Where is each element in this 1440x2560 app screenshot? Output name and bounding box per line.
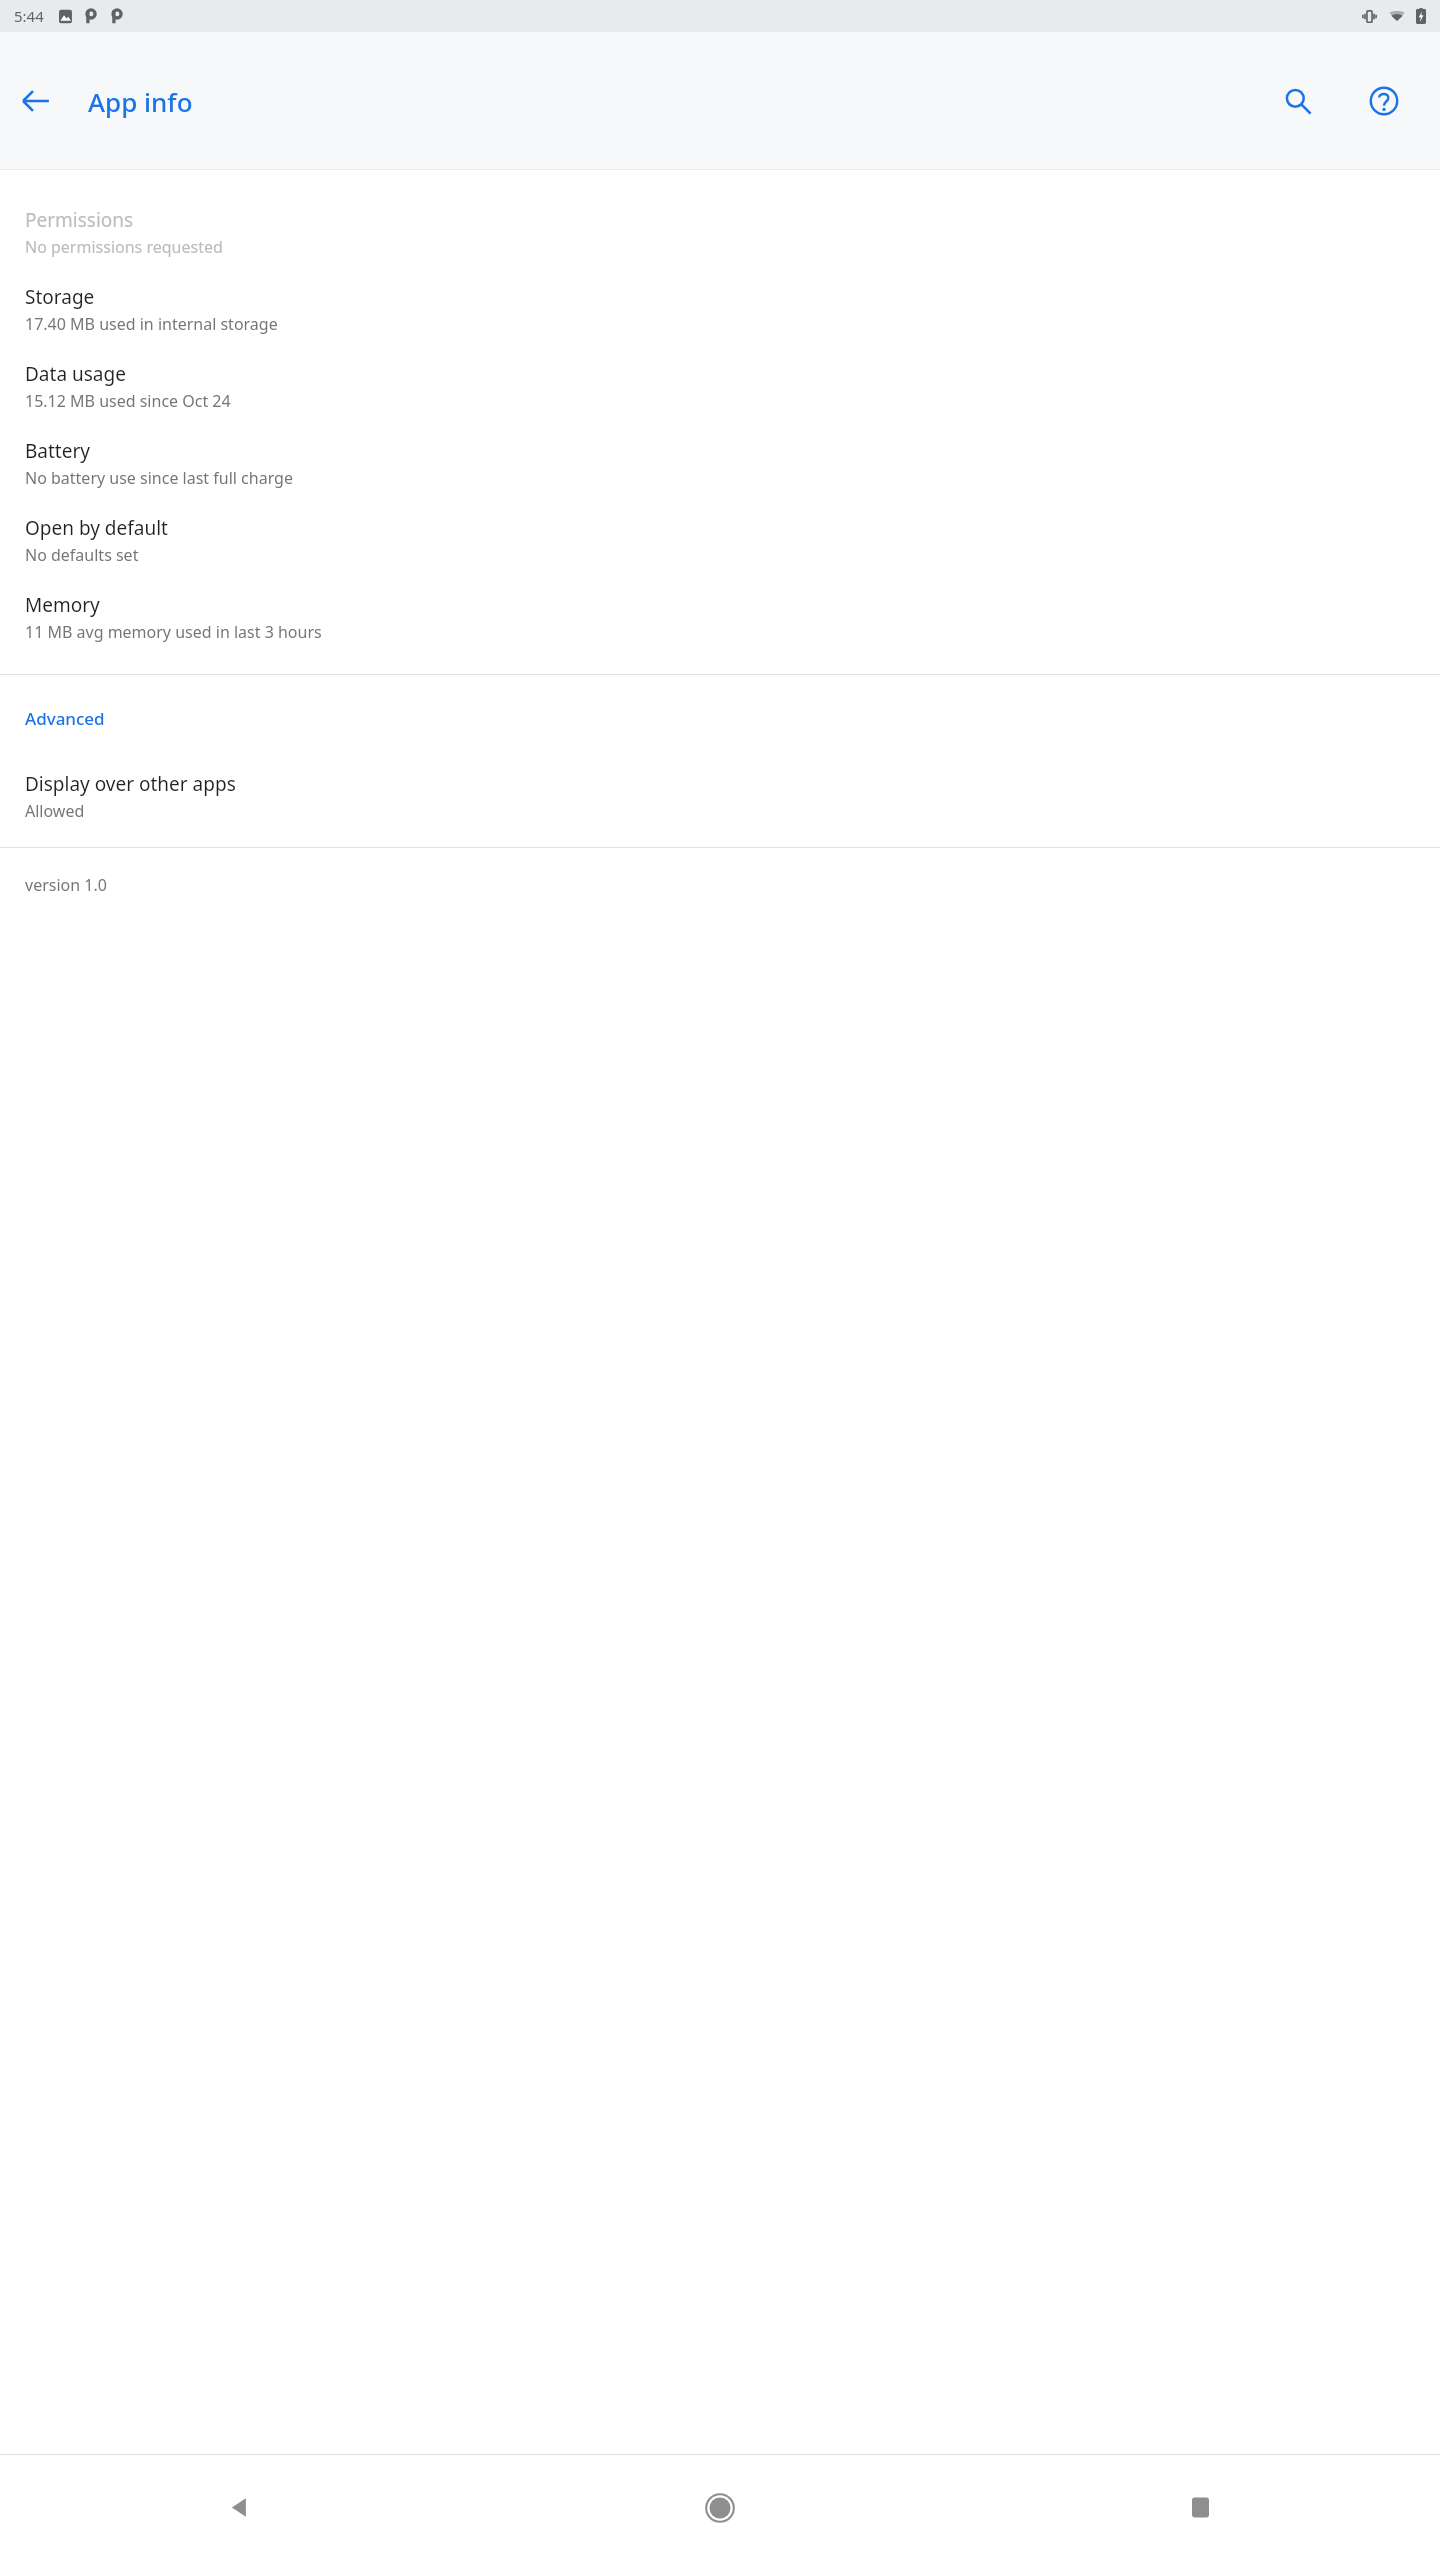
button[interactable]: Back [0, 2455, 480, 2560]
button[interactable]: Search [1262, 65, 1334, 137]
button[interactable]: Open by default [0, 502, 1440, 579]
staticText: No defaults set [25, 544, 139, 566]
staticText: 15.12 MB used since Oct 24 [25, 390, 231, 412]
button[interactable]: Permissions [0, 194, 1440, 271]
staticText: 5:44 [14, 6, 44, 26]
staticText: Open by default [25, 515, 168, 541]
staticText: Display over other apps [25, 771, 236, 797]
button[interactable]: Recent apps [960, 2455, 1440, 2560]
staticText: 17.40 MB used in internal storage [25, 313, 278, 335]
button[interactable]: Battery [0, 425, 1440, 502]
staticText: Advanced [25, 707, 105, 730]
staticText: Data usage [25, 361, 126, 387]
button[interactable]: Storage [0, 271, 1440, 348]
staticText: App info [88, 84, 193, 119]
button[interactable]: Home [480, 2455, 960, 2560]
staticText: Memory [25, 592, 100, 618]
button[interactable]: Display over other apps [0, 758, 1440, 835]
staticText: version 1.0 [25, 874, 107, 896]
button[interactable]: Advanced [0, 697, 1440, 740]
button[interactable]: Back [0, 65, 72, 137]
button[interactable]: Data usage [0, 348, 1440, 425]
staticText: Permissions [25, 207, 134, 233]
staticText: No permissions requested [25, 236, 223, 258]
staticText: No battery use since last full charge [25, 467, 293, 489]
staticText: Allowed [25, 800, 85, 822]
staticText: Battery [25, 438, 90, 464]
button[interactable]: Memory [0, 579, 1440, 656]
staticText: 11 MB avg memory used in last 3 hours [25, 621, 322, 643]
button[interactable]: Help [1348, 65, 1420, 137]
staticText: Storage [25, 284, 95, 310]
